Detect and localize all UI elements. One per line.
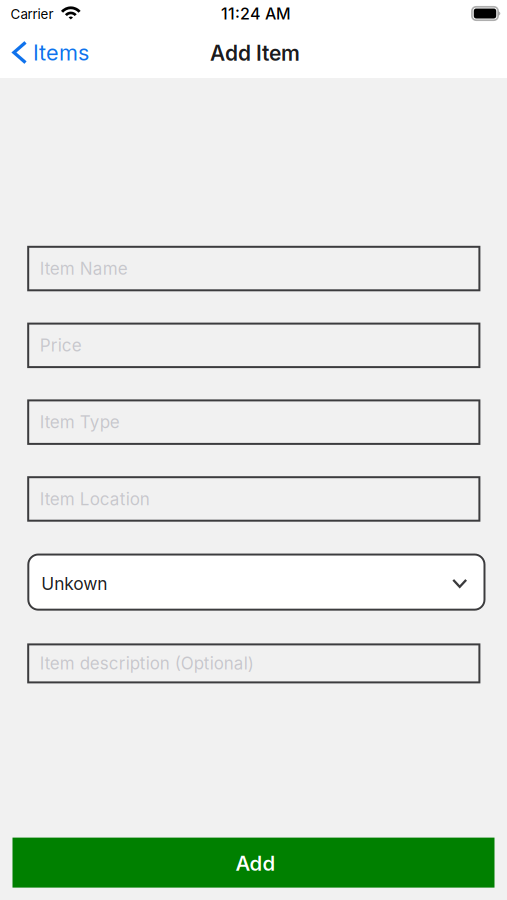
staticText: Items (33, 39, 89, 66)
staticText: Item description (Optional) (40, 653, 254, 674)
staticText: Add (235, 851, 275, 876)
button[interactable]: Add (12, 838, 494, 888)
staticText: Item Name (40, 258, 128, 279)
staticText: Unkown (41, 573, 107, 594)
staticText: Add Item (210, 40, 300, 66)
staticText: Item Type (40, 412, 120, 432)
staticText: Carrier (10, 6, 53, 22)
staticText: Price (40, 335, 82, 356)
staticText: 11:24 AM (221, 4, 291, 23)
button[interactable]: Unkown (27, 553, 485, 611)
button[interactable]: Items (0, 31, 99, 75)
staticText: Item Location (40, 489, 150, 509)
